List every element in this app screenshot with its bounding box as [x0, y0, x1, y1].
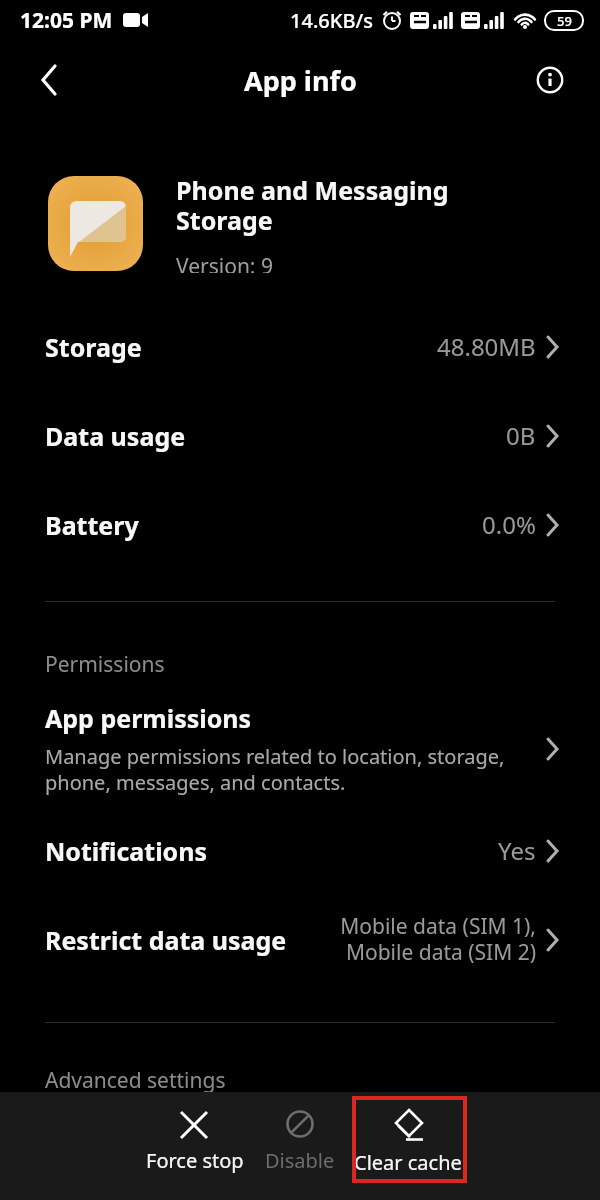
staticText: Force stop: [146, 1147, 244, 1174]
staticText: 48.80MB: [437, 330, 536, 363]
staticText: Restrict data usage: [45, 923, 287, 957]
staticText: Mobile data (SIM 1), Mobile data (SIM 2): [340, 912, 536, 967]
button[interactable]: Data usage: [0, 391, 600, 480]
staticText: Storage: [45, 330, 142, 364]
button[interactable]: Clear cache: [333, 1108, 483, 1176]
staticText: Yes: [498, 834, 536, 867]
button[interactable]: [30, 60, 70, 100]
staticText: Notifications: [45, 834, 208, 868]
staticText: Version: 9: [176, 252, 273, 273]
button[interactable]: Storage: [0, 302, 600, 391]
staticText: 0.0%: [482, 508, 536, 541]
button[interactable]: Notifications: [0, 806, 600, 895]
staticText: 0B: [506, 419, 536, 452]
button[interactable]: [530, 60, 570, 100]
staticText: App permissions: [45, 701, 252, 735]
staticText: 12:05 PM: [20, 6, 113, 35]
staticText: Clear cache: [354, 1149, 462, 1176]
button[interactable]: Battery: [0, 480, 600, 569]
staticText: Data usage: [45, 419, 186, 453]
button[interactable]: Restrict data usage: [0, 895, 600, 984]
staticText: Battery: [45, 508, 139, 542]
staticText: Disable: [265, 1147, 335, 1174]
button[interactable]: Disable: [225, 1108, 375, 1174]
staticText: Permissions: [45, 650, 165, 679]
staticText: Manage permissions related to location, …: [45, 743, 505, 796]
staticText: App info: [244, 62, 357, 99]
staticText: Advanced settings: [45, 1066, 226, 1095]
staticText: 59: [557, 12, 572, 30]
button[interactable]: Force stop: [120, 1108, 270, 1174]
staticText: Phone and Messaging Storage: [176, 173, 449, 238]
button[interactable]: App permissions: [0, 701, 600, 796]
staticText: 14.6KB/s: [290, 7, 373, 34]
